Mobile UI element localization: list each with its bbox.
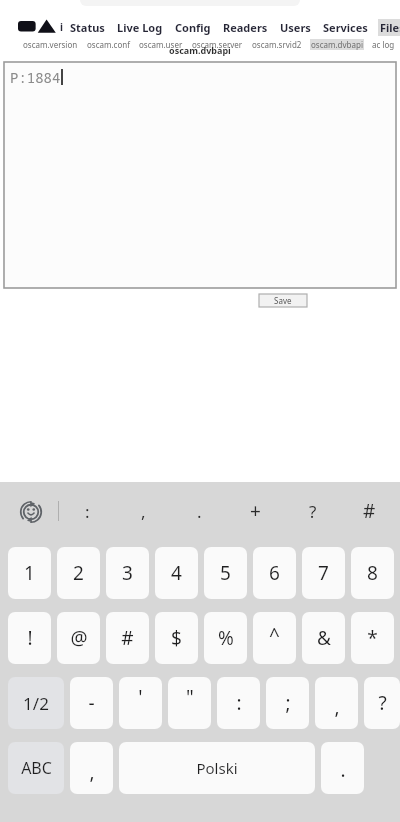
button[interactable]: ,	[315, 677, 358, 729]
staticText: ?	[309, 500, 317, 523]
button[interactable]: ac log	[371, 39, 396, 50]
other: OSCam logo	[18, 18, 60, 34]
staticText: ;	[285, 690, 291, 716]
staticText: @	[70, 625, 88, 651]
staticText: .	[340, 757, 346, 783]
button[interactable]: oscam.srvid2	[251, 39, 303, 50]
staticText: Config	[175, 20, 211, 35]
staticText: oscam.server	[192, 39, 243, 50]
staticText: :	[236, 690, 242, 716]
button[interactable]: 2	[57, 547, 100, 599]
button[interactable]: #	[341, 482, 398, 540]
button[interactable]: %	[204, 612, 247, 664]
button[interactable]: ,	[70, 742, 113, 794]
button[interactable]: !	[8, 612, 51, 664]
staticText: 6	[269, 560, 280, 586]
staticText: *	[367, 625, 378, 651]
staticText: &	[317, 625, 331, 651]
staticText: -	[88, 690, 95, 716]
button[interactable]: 1/2	[8, 677, 64, 729]
button[interactable]: "	[168, 677, 211, 729]
staticText: 8	[367, 560, 378, 586]
button[interactable]: ?	[364, 677, 400, 729]
button[interactable]: 3	[106, 547, 149, 599]
button[interactable]: Emoji	[16, 496, 46, 526]
staticText: ?	[378, 690, 387, 716]
button[interactable]: oscam.server	[191, 39, 244, 50]
button[interactable]: -	[70, 677, 113, 729]
staticText: oscam.user	[139, 39, 183, 50]
button[interactable]: 4	[155, 547, 198, 599]
staticText: i	[60, 20, 63, 34]
button[interactable]: ;	[266, 677, 309, 729]
button[interactable]: oscam.dvbapi	[310, 39, 364, 50]
staticText: !	[27, 625, 33, 651]
staticText: :	[85, 500, 90, 523]
staticText: $	[171, 625, 182, 651]
button[interactable]: Status	[68, 19, 107, 36]
staticText: ,	[141, 500, 146, 523]
staticText: oscam.conf	[87, 39, 130, 50]
staticText: Services	[323, 20, 368, 35]
staticText: Files	[380, 20, 400, 35]
staticText: ABC	[21, 757, 52, 779]
button[interactable]: oscam.user	[138, 39, 184, 50]
staticText: 5	[220, 560, 231, 586]
button[interactable]: ?	[284, 482, 341, 540]
button[interactable]: Polski	[119, 742, 315, 794]
staticText: 3	[122, 560, 133, 586]
staticText: Users	[280, 20, 311, 35]
staticText: +	[250, 498, 261, 524]
staticText: #	[363, 498, 376, 524]
button[interactable]: Readers	[221, 19, 270, 36]
button[interactable]: 5	[204, 547, 247, 599]
staticText: %	[218, 625, 234, 651]
button[interactable]: ,	[115, 482, 171, 540]
button[interactable]: P:1884	[4, 62, 396, 288]
button[interactable]: *	[351, 612, 394, 664]
staticText: ,	[89, 759, 95, 785]
staticText: 7	[318, 560, 329, 586]
button[interactable]: '	[119, 677, 162, 729]
staticText: oscam.dvbapi	[311, 39, 363, 50]
button[interactable]: .	[171, 482, 227, 540]
button[interactable]: ^	[253, 612, 296, 664]
staticText: "	[186, 684, 194, 710]
button[interactable]: 1	[8, 547, 51, 599]
staticText: oscam.srvid2	[252, 39, 302, 50]
staticText: #	[121, 625, 134, 651]
button[interactable]: Config	[173, 19, 213, 36]
button[interactable]: Files	[378, 19, 400, 36]
button[interactable]: 6	[253, 547, 296, 599]
button[interactable]: .	[321, 742, 364, 794]
staticText: Save	[274, 295, 292, 306]
staticText: Readers	[223, 20, 268, 35]
button[interactable]: Save	[259, 294, 307, 307]
button[interactable]: +	[227, 482, 284, 540]
staticText: 2	[73, 560, 84, 586]
staticText: oscam.dvbapi	[169, 44, 231, 56]
staticText: Live Log	[117, 20, 163, 35]
button[interactable]: Live Log	[115, 19, 165, 36]
staticText: ^	[269, 622, 280, 648]
button[interactable]: Users	[278, 19, 313, 36]
button[interactable]: :	[217, 677, 260, 729]
button[interactable]: ABC	[8, 742, 64, 794]
button[interactable]: #	[106, 612, 149, 664]
button[interactable]: @	[57, 612, 100, 664]
staticText: oscam.version	[23, 39, 78, 50]
button[interactable]: &	[302, 612, 345, 664]
button[interactable]: oscam.version	[22, 39, 79, 50]
button[interactable]: $	[155, 612, 198, 664]
button[interactable]: :	[59, 482, 115, 540]
staticText: ac log	[372, 39, 395, 50]
button[interactable]: 8	[351, 547, 394, 599]
button[interactable]: Services	[321, 19, 370, 36]
staticText: .	[197, 500, 202, 523]
button[interactable]: 7	[302, 547, 345, 599]
staticText: ,	[334, 694, 340, 720]
staticText: 4	[171, 560, 182, 586]
staticText: Status	[70, 20, 105, 35]
staticText: Polski	[196, 758, 238, 778]
button[interactable]: oscam.conf	[86, 39, 131, 50]
